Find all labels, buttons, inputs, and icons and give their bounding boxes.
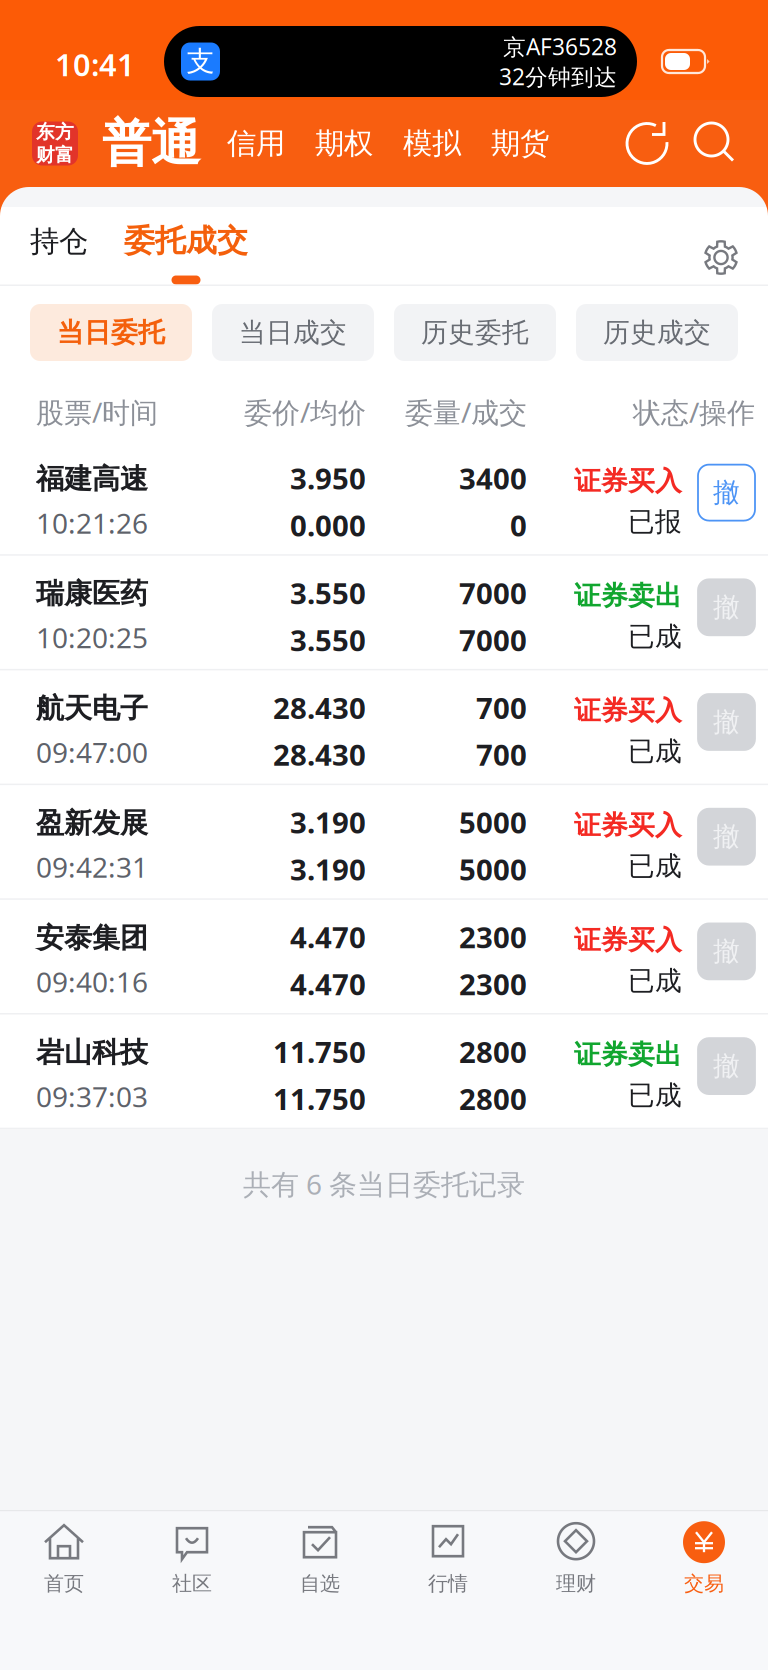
staticText: 信用 [227, 125, 285, 161]
staticText: 委托成交 [124, 222, 248, 259]
staticText: 7000 [459, 573, 527, 612]
staticText: 10:41 [55, 44, 135, 85]
staticText: 已成 [628, 1079, 682, 1112]
staticText: 4.470 [290, 964, 366, 1003]
button[interactable]: 当日委托 [30, 304, 192, 361]
staticText: 700 [476, 735, 527, 774]
staticText: 已报 [628, 506, 682, 538]
button[interactable]: 历史委托 [394, 304, 556, 361]
staticText: 3.550 [290, 573, 366, 612]
staticText: 10:20:25 [36, 619, 148, 656]
staticText: 3.190 [290, 803, 366, 842]
staticText: 2300 [459, 964, 527, 1003]
staticText: 撤 [713, 1050, 740, 1082]
staticText: 共有 6 条当日委托记录 [243, 1165, 525, 1202]
staticText: 撤 [713, 935, 740, 968]
staticText: 5000 [459, 803, 527, 842]
staticText: 已成 [628, 964, 682, 997]
staticText: 期权 [315, 125, 373, 161]
staticText: 7000 [459, 620, 527, 659]
staticText: 期货 [491, 125, 549, 161]
staticText: 自选 [300, 1571, 340, 1596]
staticText: 撤 [713, 820, 740, 853]
button[interactable]: 撤 [698, 579, 755, 653]
button[interactable]: 社区 [128, 1511, 256, 1611]
staticText: 委价/均价 [244, 393, 366, 431]
staticText: 证券卖出 [574, 579, 682, 612]
staticText: 福建高速 [36, 462, 148, 496]
staticText: 3.190 [290, 850, 366, 889]
staticText: 3.550 [290, 620, 366, 659]
staticText: 09:42:31 [36, 848, 148, 885]
staticText: 证券买入 [574, 924, 682, 956]
staticText: 3400 [459, 459, 527, 498]
staticText: 700 [476, 688, 527, 727]
staticText: 模拟 [403, 125, 461, 161]
staticText: 历史委托 [421, 316, 529, 349]
button[interactable]: 刷新 [620, 116, 674, 170]
button[interactable]: 撤 [698, 465, 755, 539]
staticText: 瑞康医药 [36, 576, 148, 611]
button[interactable]: 理财 [512, 1511, 640, 1611]
staticText: 交易 [684, 1571, 724, 1596]
staticText: 09:40:16 [36, 963, 148, 1000]
button[interactable]: 期货 [491, 125, 549, 161]
button[interactable]: 撤 [698, 923, 755, 997]
staticText: 5000 [459, 850, 527, 889]
button[interactable]: 信用 [227, 125, 285, 161]
button[interactable]: 行情 [384, 1511, 512, 1611]
staticText: 32分钟到达 [499, 61, 617, 92]
staticText: 0 [510, 506, 527, 545]
staticText: 0.000 [290, 506, 366, 545]
staticText: 首页 [44, 1571, 84, 1596]
button[interactable]: 首页 [0, 1511, 128, 1611]
staticText: 已成 [628, 620, 682, 653]
staticText: 理财 [556, 1571, 596, 1596]
button[interactable]: 撤 [698, 809, 755, 883]
button[interactable]: 交易 [640, 1511, 768, 1611]
staticText: 盈新发展 [36, 806, 148, 840]
staticText: 3.950 [290, 459, 366, 498]
staticText: 28.430 [273, 735, 366, 774]
staticText: 状态/操作 [633, 393, 755, 431]
staticText: 证券买入 [574, 809, 682, 842]
staticText: 东方 [36, 121, 74, 143]
staticText: 当日委托 [57, 316, 165, 349]
staticText: 安泰集团 [36, 921, 148, 955]
staticText: 09:47:00 [36, 734, 148, 771]
staticText: 行情 [428, 1571, 468, 1596]
staticText: 支 [186, 44, 214, 79]
staticText: 已成 [628, 735, 682, 768]
staticText: 撤 [713, 706, 740, 738]
staticText: 10:21:26 [36, 504, 148, 541]
button[interactable]: 设置 [697, 233, 745, 281]
button[interactable]: 撤 [698, 694, 755, 768]
staticText: 股票/时间 [36, 393, 158, 431]
staticText: 持仓 [30, 223, 88, 259]
staticText: 财富 [36, 143, 74, 166]
button[interactable]: 历史成交 [576, 304, 738, 361]
staticText: 2300 [459, 917, 527, 956]
staticText: 撤 [713, 476, 740, 509]
button[interactable]: 持仓 [30, 223, 88, 284]
button[interactable]: 搜索 [688, 116, 742, 170]
staticText: 京AF36528 [503, 31, 617, 61]
staticText: 28.430 [273, 688, 366, 727]
staticText: 2800 [459, 1079, 527, 1118]
button[interactable]: 当日成交 [212, 304, 374, 361]
staticText: 证券卖出 [574, 1038, 682, 1071]
button[interactable]: 模拟 [403, 125, 461, 161]
staticText: 当日成交 [239, 316, 347, 349]
staticText: 撤 [713, 591, 740, 624]
button[interactable]: 普通 [102, 113, 200, 174]
button[interactable]: 期权 [315, 125, 373, 161]
staticText: 4.470 [290, 917, 366, 956]
staticText: 证券买入 [574, 694, 682, 727]
button[interactable]: 委托成交 [124, 222, 248, 284]
staticText: 岩山科技 [36, 1035, 148, 1070]
staticText: 已成 [628, 850, 682, 882]
staticText: 2800 [459, 1032, 527, 1071]
button[interactable]: 自选 [256, 1511, 384, 1611]
button[interactable]: 撤 [698, 1038, 755, 1112]
button[interactable]: 东方财富 [32, 121, 78, 165]
